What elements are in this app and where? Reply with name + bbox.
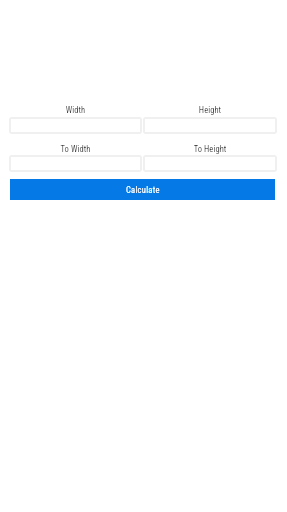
staticText: To Width bbox=[9, 144, 142, 154]
button[interactable]: Width input field bbox=[9, 117, 142, 134]
button[interactable]: Height input field bbox=[143, 117, 277, 134]
button[interactable]: To Width input field bbox=[9, 155, 142, 172]
staticText: Height bbox=[143, 105, 277, 115]
staticText: Calculate bbox=[126, 185, 160, 195]
staticText: To Height bbox=[143, 144, 277, 154]
button[interactable]: To Height input field bbox=[143, 155, 277, 172]
button[interactable]: Calculate bbox=[10, 179, 275, 200]
staticText: Width bbox=[9, 105, 142, 115]
